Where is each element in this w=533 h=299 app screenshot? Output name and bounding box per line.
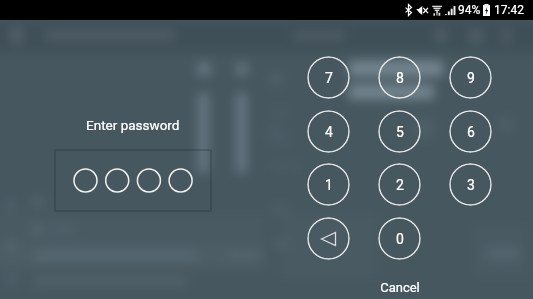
button[interactable]: 2 xyxy=(378,163,421,206)
staticText: 4 xyxy=(325,124,333,140)
staticText: 5 xyxy=(396,124,404,140)
button[interactable]: 9 xyxy=(449,56,492,99)
button[interactable]: Backspace xyxy=(307,217,350,260)
staticText: Cancel xyxy=(380,280,420,295)
staticText: 7 xyxy=(325,70,333,86)
staticText: 0 xyxy=(396,231,404,247)
staticText: 1 xyxy=(325,177,333,193)
staticText: 6 xyxy=(467,124,475,140)
button[interactable]: 8 xyxy=(378,56,421,99)
staticText: 3 xyxy=(467,177,475,193)
button[interactable]: 0 xyxy=(378,217,421,260)
button[interactable]: 1 xyxy=(307,163,350,206)
button[interactable]: 7 xyxy=(307,56,350,99)
button[interactable]: 6 xyxy=(449,110,492,153)
button[interactable]: 3 xyxy=(449,163,492,206)
button[interactable]: Cancel xyxy=(370,277,430,297)
button[interactable]: Password field xyxy=(55,150,211,211)
staticText: 17:42 xyxy=(494,3,524,17)
staticText: 94% xyxy=(458,3,481,17)
staticText: 9 xyxy=(467,70,475,86)
button[interactable]: 4 xyxy=(307,110,350,153)
staticText: 2 xyxy=(396,177,404,193)
button[interactable]: 5 xyxy=(378,110,421,153)
staticText: Enter password xyxy=(86,117,180,133)
staticText: 8 xyxy=(396,70,404,86)
